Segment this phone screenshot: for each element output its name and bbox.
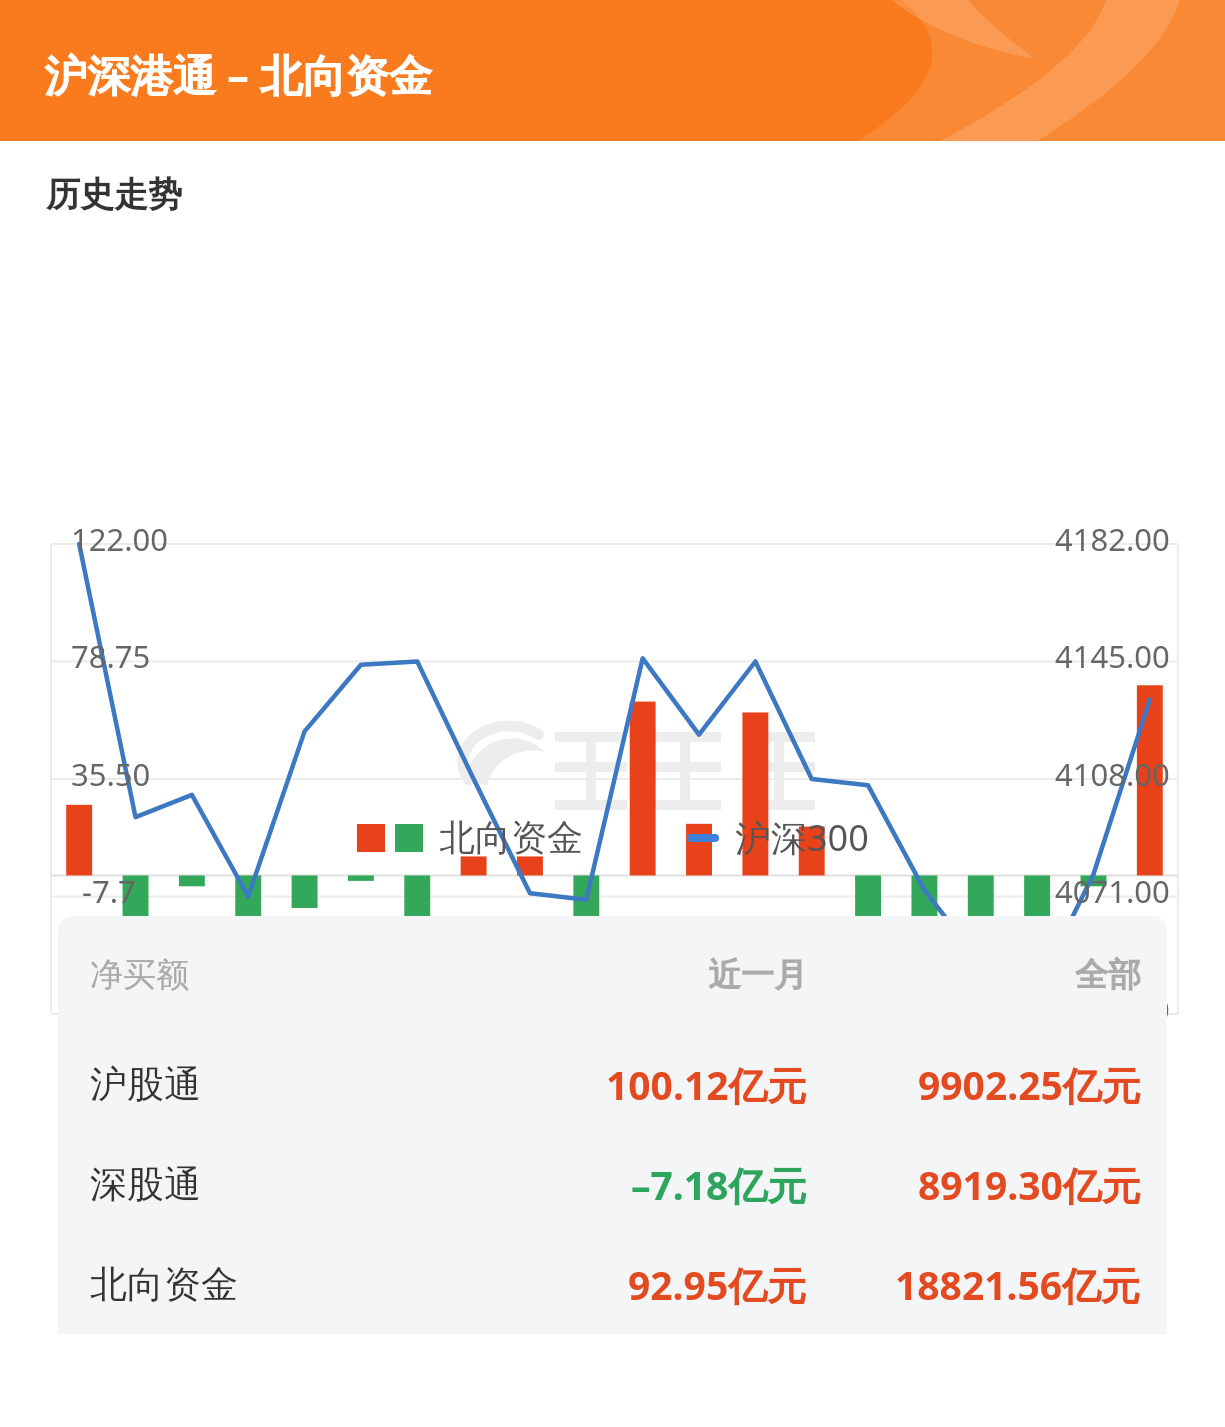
button[interactable]: 北向资金	[58, 1234, 1167, 1334]
staticText: 全部	[1075, 954, 1141, 996]
staticText: 4108.00	[1055, 753, 1170, 795]
staticText: 2023-02-02	[77, 1031, 245, 1075]
button[interactable]: 沪股通	[58, 1034, 1167, 1134]
staticText: -7.7	[82, 870, 136, 912]
button[interactable]: 北向资金	[353, 811, 587, 864]
staticText: 4034.00	[1055, 988, 1170, 1030]
staticText: 92.95亿元	[628, 1258, 807, 1311]
staticText: 2023-03-01	[975, 1031, 1143, 1075]
staticText: 深股通	[90, 1161, 201, 1208]
staticText: 北向资金	[439, 815, 583, 860]
button[interactable]: 深股通	[58, 1134, 1167, 1234]
staticText: 净买额	[90, 954, 189, 996]
staticText: 18821.56亿元	[895, 1258, 1141, 1311]
staticText: 近一月	[708, 954, 807, 996]
staticText: –7.18亿元	[631, 1158, 807, 1211]
staticText: 100.12亿元	[606, 1058, 807, 1111]
button[interactable]: 净买额	[58, 916, 1167, 1034]
staticText: 4071.00	[1055, 870, 1170, 912]
staticText: 122.00	[71, 518, 168, 560]
staticText: 历史走势	[46, 173, 182, 216]
staticText: 78.75	[71, 635, 151, 677]
staticText: 8919.30亿元	[918, 1158, 1141, 1211]
staticText: 北向资金	[90, 1261, 238, 1308]
staticText: 沪股通	[90, 1061, 201, 1108]
button[interactable]: 沪深300	[683, 809, 873, 866]
staticText: 沪深300	[735, 813, 869, 862]
staticText: 35.50	[71, 753, 151, 795]
staticText: 4145.00	[1055, 635, 1170, 677]
staticText: 9902.25亿元	[918, 1058, 1141, 1111]
staticText: -51.00	[71, 988, 161, 1030]
staticText: 4182.00	[1055, 518, 1170, 560]
staticText: 沪深港通 – 北向资金	[44, 45, 432, 104]
